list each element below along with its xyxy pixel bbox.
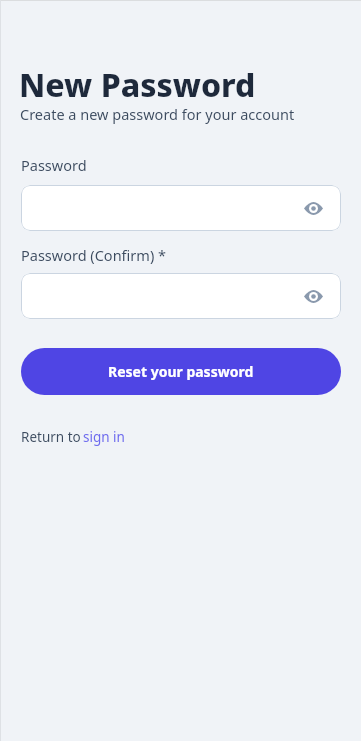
staticText: Reset your password <box>108 362 254 381</box>
button[interactable]: sign in <box>83 428 125 446</box>
button[interactable] <box>304 290 323 303</box>
staticText: New Password <box>19 63 256 107</box>
button[interactable]: Reset your password <box>21 348 341 395</box>
button[interactable] <box>304 202 323 215</box>
button[interactable] <box>21 185 341 231</box>
staticText: Password (Confirm) * <box>21 245 166 265</box>
staticText: Create a new password for your account <box>20 104 295 124</box>
staticText: Password <box>21 155 87 175</box>
staticText: Return to <box>21 428 81 446</box>
button[interactable] <box>21 273 341 319</box>
staticText: sign in <box>83 428 125 446</box>
